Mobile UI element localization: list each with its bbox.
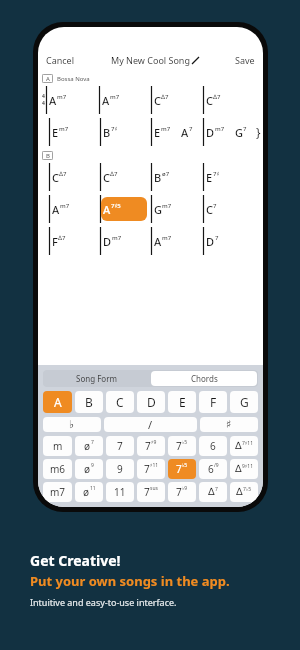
button[interactable]: /	[104, 417, 197, 432]
staticText: ♭	[69, 418, 75, 431]
staticText: m7	[162, 234, 172, 242]
button[interactable]: m7	[43, 482, 72, 502]
staticText: Cancel	[46, 54, 75, 66]
button[interactable]: B	[75, 391, 103, 413]
button[interactable]: D	[100, 225, 151, 257]
staticText: C	[103, 170, 110, 185]
button[interactable]: 9	[106, 459, 134, 479]
staticText: My New Cool Song	[111, 54, 190, 66]
button[interactable]: 6	[199, 436, 227, 456]
staticText: 7	[243, 125, 247, 133]
staticText: ∆7	[110, 170, 118, 178]
staticText: 11	[90, 485, 96, 492]
button[interactable]: 11	[106, 482, 134, 502]
staticText: 7♯11	[242, 440, 253, 447]
staticText: A	[54, 394, 62, 410]
button[interactable]: A	[151, 225, 203, 257]
button[interactable]: 7	[137, 482, 165, 502]
button[interactable]: ♭	[43, 417, 101, 432]
button[interactable]: Song Form	[43, 370, 150, 387]
staticText: 7♭5	[243, 486, 252, 493]
staticText: 4	[42, 100, 45, 107]
staticText: ♯9	[151, 439, 157, 446]
button[interactable]: ø	[75, 436, 103, 456]
button[interactable]: D	[203, 225, 255, 257]
button[interactable]: Cancel	[46, 54, 75, 66]
button[interactable]: A	[99, 84, 151, 116]
staticText: C	[206, 202, 213, 217]
staticText: C	[52, 170, 59, 185]
button[interactable]: C	[100, 161, 151, 193]
staticText: ∆7	[59, 170, 67, 178]
button[interactable]: A	[43, 391, 72, 413]
button[interactable]: C	[151, 84, 203, 116]
staticText: 9♯11	[242, 463, 253, 470]
staticText: ø	[84, 439, 91, 453]
button[interactable]: 6	[199, 459, 227, 479]
staticText: Song Form	[76, 373, 117, 384]
staticText: Get Creative!	[30, 551, 121, 570]
button[interactable]: ∆	[199, 482, 227, 502]
staticText: ∆7	[213, 93, 221, 101]
button[interactable]: D	[137, 391, 165, 413]
staticText: m	[53, 439, 63, 453]
button[interactable]: B	[151, 161, 203, 193]
staticText: m7	[50, 485, 66, 499]
button[interactable]: D	[203, 116, 255, 148]
staticText: /9	[214, 462, 219, 469]
button[interactable]: 7	[137, 459, 165, 479]
button[interactable]: Save	[235, 54, 255, 66]
staticText: ∆	[235, 463, 242, 475]
button[interactable]: My New Cool Song	[111, 54, 199, 66]
staticText: 7	[91, 439, 94, 446]
staticText: A	[103, 202, 111, 217]
button[interactable]: ∆	[230, 459, 258, 479]
button[interactable]: C	[49, 161, 100, 193]
staticText: m7	[161, 125, 171, 133]
staticText: ∆	[208, 486, 215, 498]
button[interactable]: ø	[75, 482, 103, 502]
button[interactable]: Chords	[151, 371, 257, 386]
button[interactable]: G	[230, 391, 258, 413]
staticText: ♯	[226, 418, 232, 431]
button[interactable]: C	[106, 391, 134, 413]
button[interactable]: 7	[137, 436, 165, 456]
staticText: ∆	[236, 486, 243, 498]
button[interactable]: C	[203, 193, 255, 225]
button[interactable]: A	[100, 193, 151, 225]
button[interactable]: ∆	[230, 436, 258, 456]
button[interactable]: F	[199, 391, 227, 413]
button[interactable]: C	[203, 84, 255, 116]
button[interactable]: A	[49, 193, 100, 225]
staticText: 7	[176, 462, 182, 476]
button[interactable]: 7	[168, 482, 196, 502]
staticText: m7	[60, 202, 70, 210]
staticText: }	[256, 124, 261, 140]
button[interactable]: 7	[168, 436, 196, 456]
button[interactable]: m6	[43, 459, 72, 479]
button[interactable]: F	[49, 225, 100, 257]
button[interactable]: B	[100, 116, 151, 148]
staticText: 7	[176, 439, 182, 453]
button[interactable]: 7	[168, 459, 196, 479]
staticText: E	[52, 125, 59, 140]
staticText: G	[235, 125, 243, 140]
staticText: 9	[91, 462, 94, 469]
staticText: ♭5	[182, 439, 188, 446]
staticText: D	[206, 125, 215, 140]
button[interactable]: E	[203, 161, 255, 193]
staticText: 7	[117, 439, 123, 453]
button[interactable]: E	[168, 391, 196, 413]
staticText: m7	[59, 125, 69, 133]
staticText: 7♯5	[111, 202, 121, 210]
button[interactable]: ♯	[200, 417, 258, 432]
button[interactable]: G	[151, 193, 203, 225]
button[interactable]: 7	[106, 436, 134, 456]
button[interactable]: E	[49, 116, 100, 148]
button[interactable]: ∆	[230, 482, 258, 502]
staticText: /	[148, 417, 153, 432]
button[interactable]: A	[46, 84, 99, 116]
button[interactable]: m	[43, 436, 72, 456]
button[interactable]: E	[151, 116, 203, 148]
button[interactable]: ø	[75, 459, 103, 479]
